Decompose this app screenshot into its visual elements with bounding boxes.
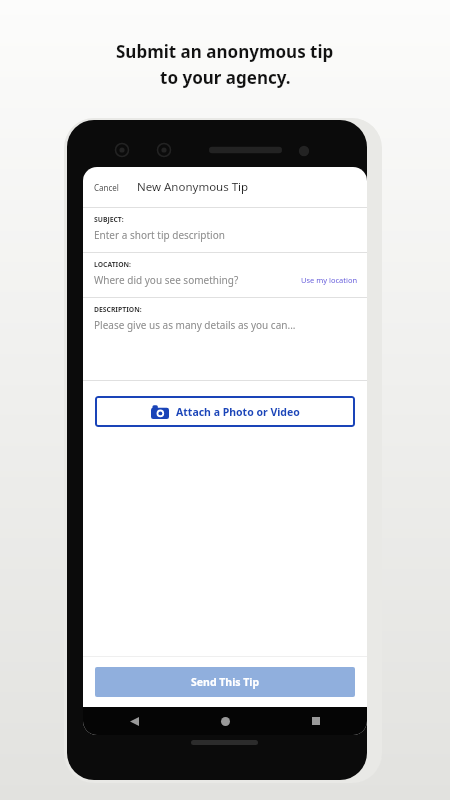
button[interactable]: DESCRIPTION: bbox=[83, 298, 367, 380]
button[interactable]: Send This Tip bbox=[95, 667, 355, 697]
other: Camera bbox=[151, 405, 169, 419]
staticText: Attach a Photo or Video bbox=[176, 405, 300, 419]
staticText: Where did you see something? bbox=[94, 273, 239, 287]
button[interactable]: Recent apps bbox=[305, 710, 327, 732]
staticText: Send This Tip bbox=[191, 675, 260, 689]
staticText: DESCRIPTION: bbox=[94, 305, 142, 314]
staticText: SUBJECT: bbox=[94, 215, 124, 224]
button[interactable]: LOCATION: bbox=[83, 253, 367, 297]
button[interactable]: Camera bbox=[95, 396, 355, 427]
button[interactable]: SUBJECT: bbox=[83, 208, 367, 252]
staticText: Submit an anonymous tip bbox=[116, 40, 334, 63]
button[interactable]: Back bbox=[123, 710, 145, 732]
button[interactable]: Use my location bbox=[301, 275, 358, 285]
button[interactable]: Cancel bbox=[83, 176, 127, 199]
staticText: LOCATION: bbox=[94, 260, 132, 269]
button[interactable]: Home bbox=[214, 710, 236, 732]
staticText: New Anonymous Tip bbox=[137, 179, 249, 195]
staticText: Enter a short tip description bbox=[94, 228, 225, 242]
staticText: Use my location bbox=[301, 275, 358, 285]
staticText: Please give us as many details as you ca… bbox=[94, 318, 296, 332]
staticText: Cancel bbox=[94, 182, 119, 193]
staticText: to your agency. bbox=[160, 66, 291, 89]
